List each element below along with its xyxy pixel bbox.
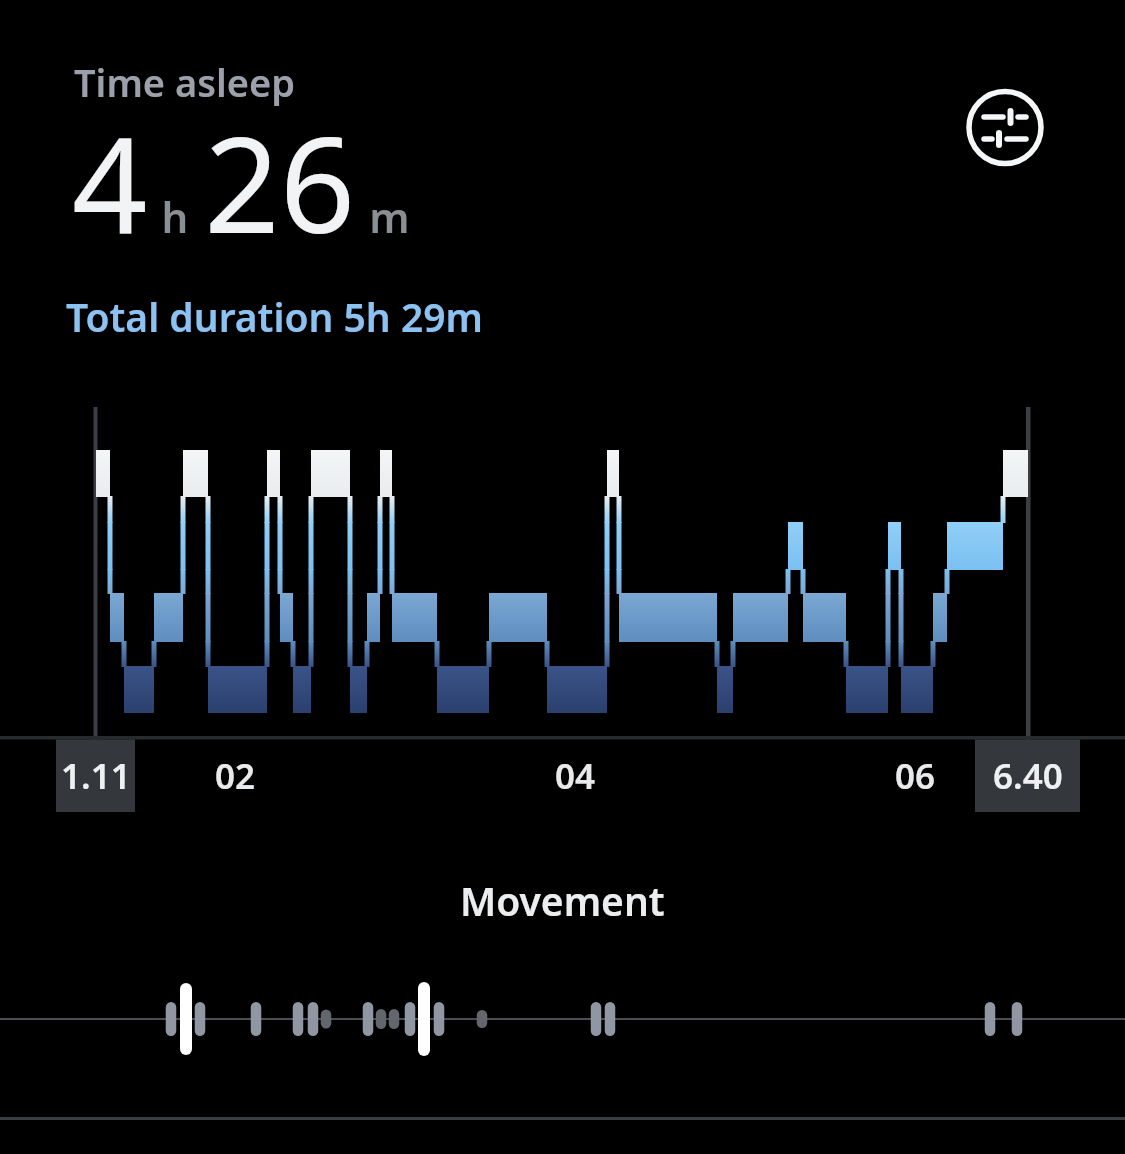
staticText: Movement	[460, 874, 665, 926]
staticText: Total duration 5h 29m	[66, 290, 483, 343]
staticText: 4h26m	[72, 92, 410, 272]
button[interactable]: 02	[165, 748, 305, 804]
staticText: 06	[895, 752, 936, 800]
button[interactable]: 04	[505, 748, 645, 804]
button[interactable]: 06	[845, 748, 985, 804]
staticText: 02	[215, 752, 256, 800]
staticText: 04	[555, 752, 596, 800]
staticText: Time asleep	[74, 56, 295, 108]
staticText: 1.11	[61, 752, 131, 800]
button[interactable]	[963, 85, 1048, 170]
button[interactable]: 6.40	[958, 748, 1098, 804]
button[interactable]: 1.11	[26, 748, 166, 804]
staticText: 6.40	[993, 752, 1063, 800]
